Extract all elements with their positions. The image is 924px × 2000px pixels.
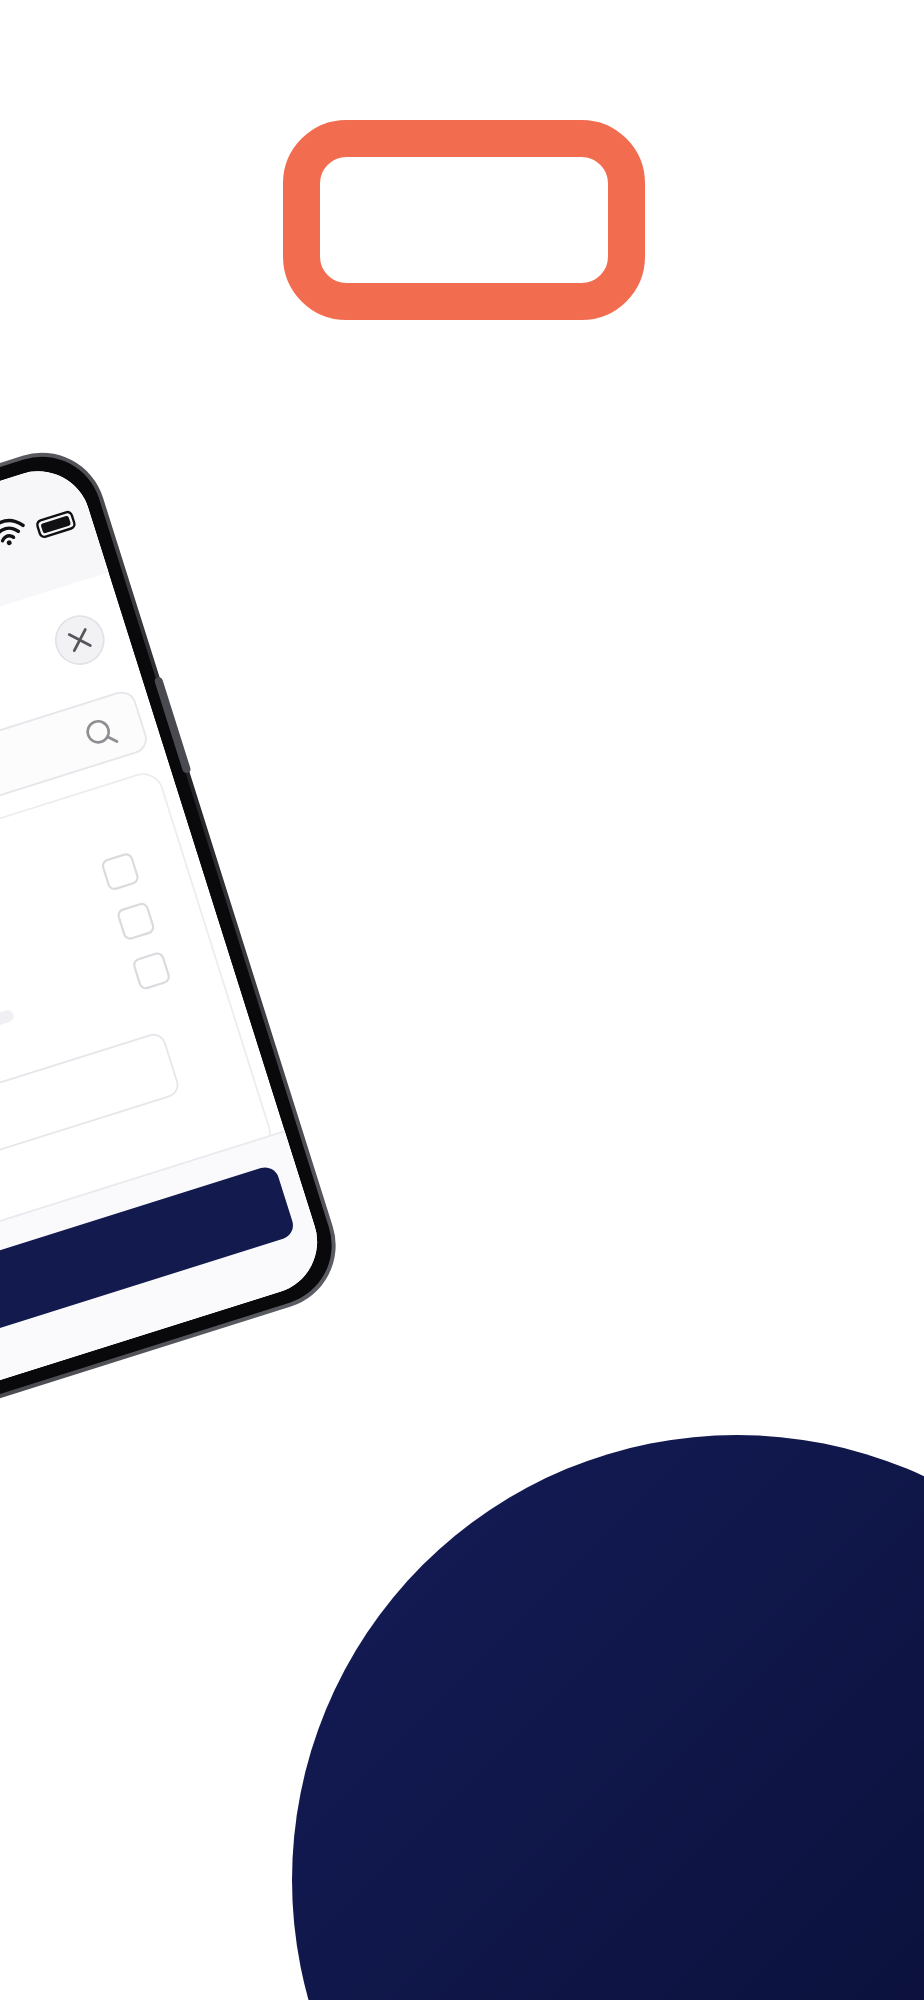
button[interactable]: Product showcase illustration [0, 0, 924, 2000]
